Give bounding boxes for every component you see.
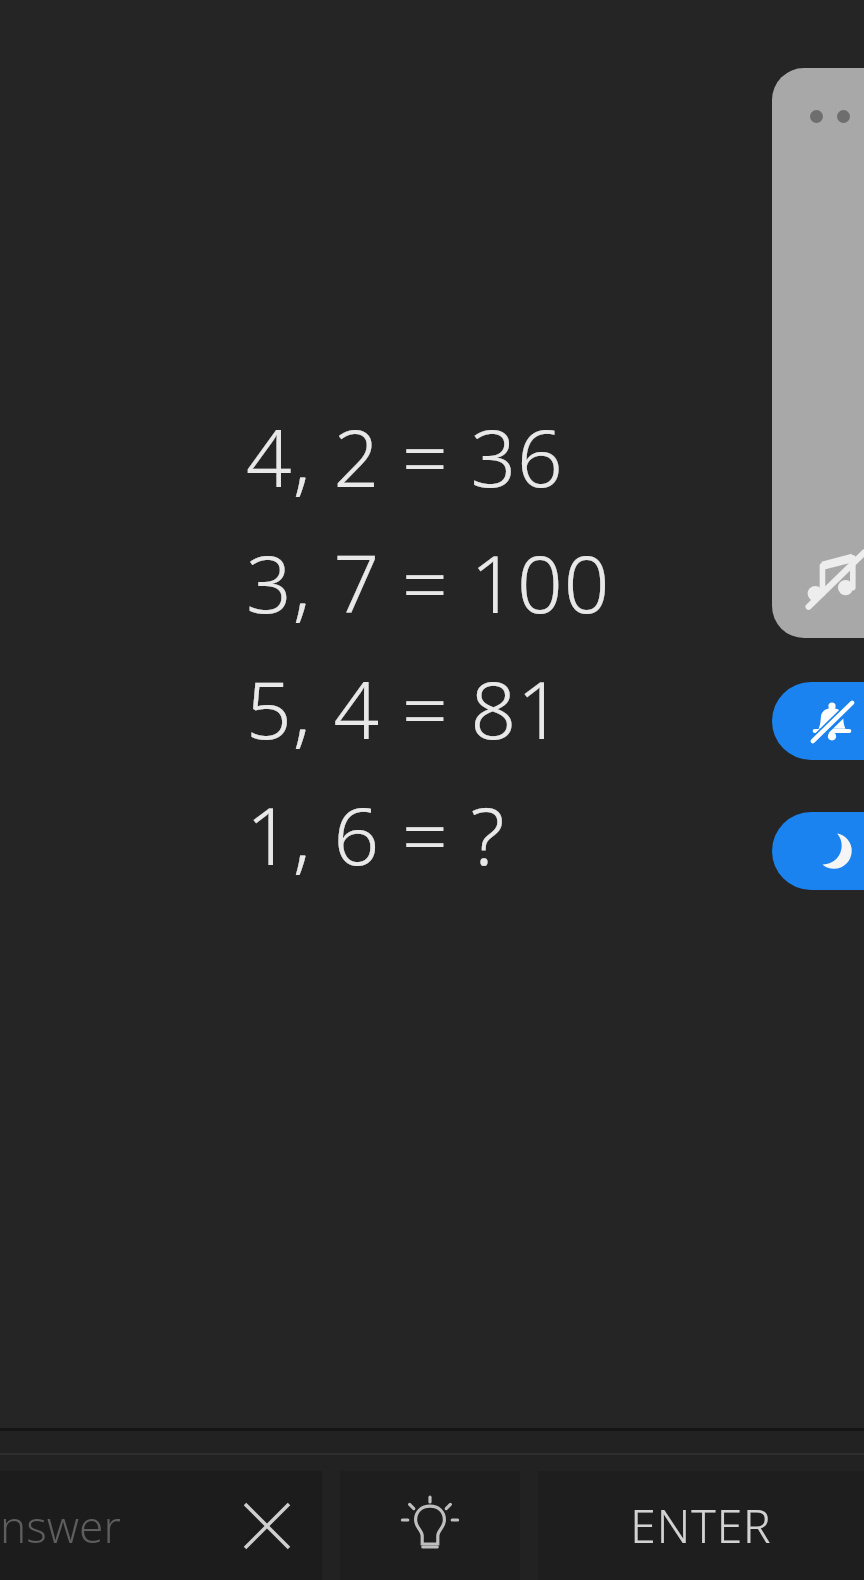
staticText: 5, 4 = 81 (246, 653, 564, 762)
button[interactable]: nswer (0, 1471, 322, 1580)
button[interactable]: Volume panel (772, 68, 864, 638)
staticText: nswer (0, 1496, 121, 1556)
button[interactable]: Mute notifications (772, 682, 864, 760)
button[interactable]: Hint (340, 1471, 520, 1580)
button[interactable]: ENTER (538, 1471, 864, 1580)
button[interactable]: Do not disturb (772, 812, 864, 890)
staticText: 1, 6 = ? (246, 779, 506, 888)
staticText: 3, 7 = 100 (246, 527, 611, 636)
staticText: ENTER (630, 1494, 772, 1557)
button[interactable]: Clear (230, 1489, 304, 1563)
staticText: 4, 2 = 36 (246, 401, 564, 510)
